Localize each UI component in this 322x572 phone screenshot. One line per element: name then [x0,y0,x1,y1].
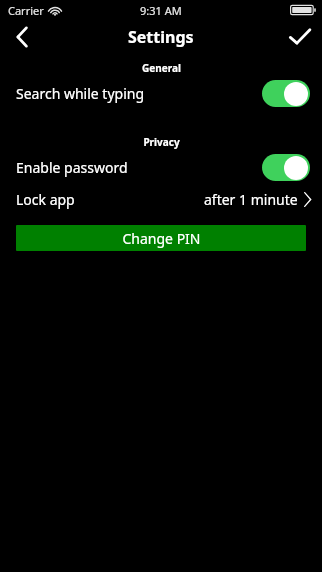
staticText: Privacy [143,135,180,149]
button[interactable]: Lock app [0,184,322,214]
staticText: Enable password [16,158,128,177]
button[interactable]: Search while typing [0,76,322,110]
staticText: Change PIN [122,229,201,248]
other: Toggle on [262,154,310,181]
button[interactable]: Change PIN [16,225,306,251]
button[interactable]: Done [278,20,322,54]
button[interactable]: Enable password [0,150,322,184]
other: Toggle on [262,80,310,107]
staticText: 9:31 AM [140,3,182,18]
staticText: General [142,61,181,75]
staticText: after 1 minute [204,190,298,209]
staticText: Carrier [8,3,44,18]
staticText: Lock app [16,190,75,209]
staticText: Settings [128,26,194,48]
staticText: Search while typing [16,84,145,103]
button[interactable]: Back [0,20,44,54]
